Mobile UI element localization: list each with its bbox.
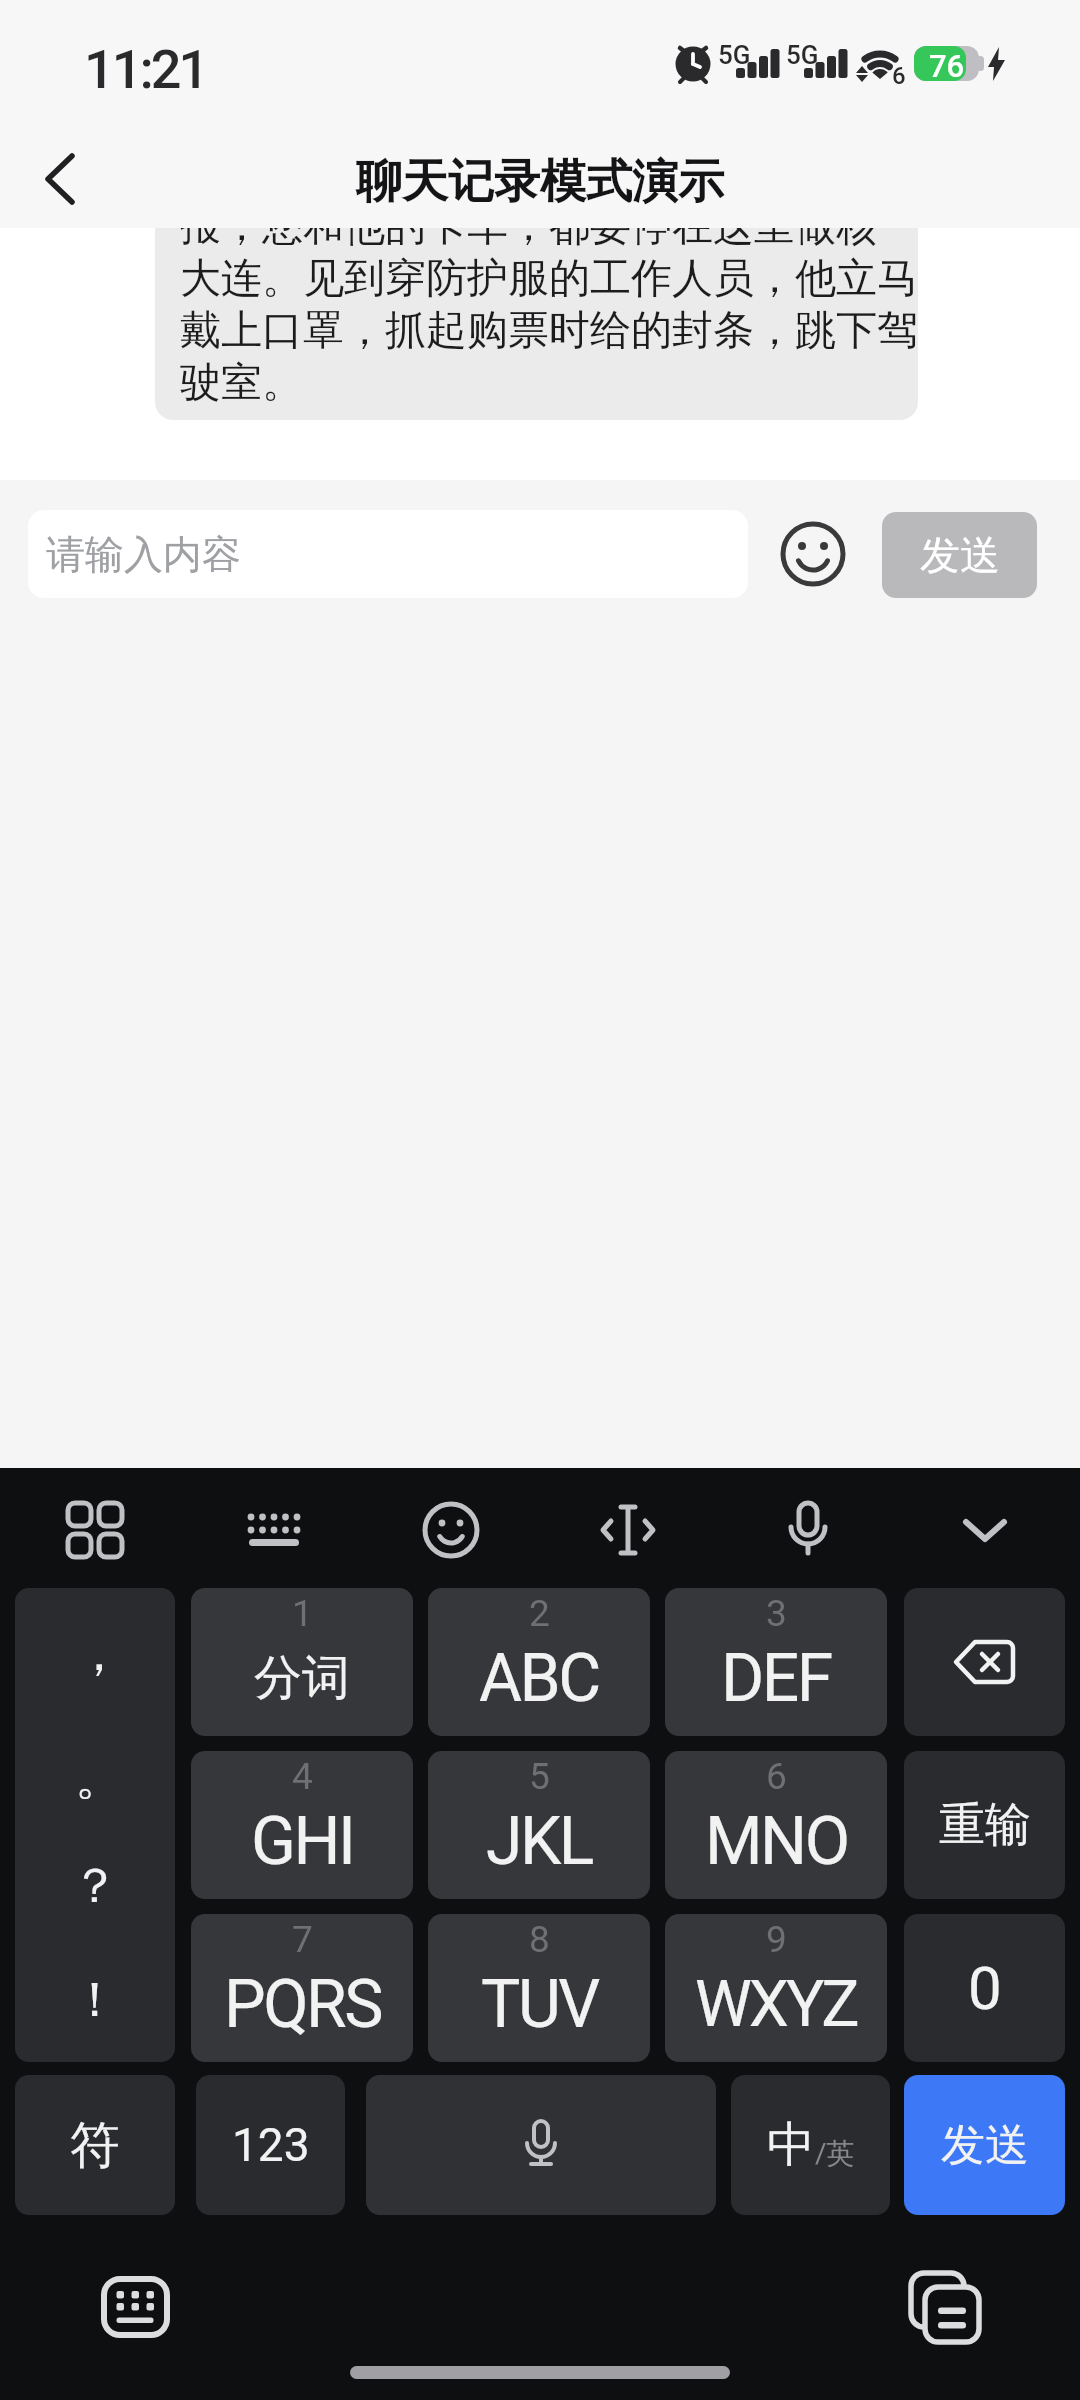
button[interactable]: 3 bbox=[665, 1588, 887, 1736]
button[interactable]: 符 bbox=[15, 2075, 175, 2215]
staticText: 3 bbox=[766, 1592, 787, 1635]
staticText: 7 bbox=[292, 1918, 313, 1961]
button[interactable] bbox=[896, 2262, 994, 2352]
staticText: 符 bbox=[70, 2114, 120, 2177]
button[interactable]: 中 bbox=[731, 2075, 890, 2215]
staticText: 聊天记录模式演示 bbox=[356, 153, 724, 211]
staticText: DEF bbox=[721, 1640, 831, 1717]
button[interactable] bbox=[768, 1490, 848, 1570]
staticText: 戴上口罩，抓起购票时给的封条，跳下驾 bbox=[180, 305, 918, 357]
staticText: 5G bbox=[718, 40, 751, 70]
button[interactable]: 123 bbox=[196, 2075, 345, 2215]
staticText: ABC bbox=[479, 1640, 599, 1717]
staticText: 发送 bbox=[941, 2118, 1029, 2173]
staticText: 驶室。 bbox=[180, 357, 303, 409]
staticText: ？ bbox=[71, 1856, 119, 1916]
button[interactable]: 发送 bbox=[882, 512, 1037, 598]
staticText: 报，您和他的卡车，都要停在这里做核 bbox=[180, 228, 877, 253]
staticText: 1 bbox=[292, 1592, 313, 1635]
button[interactable] bbox=[778, 519, 848, 589]
staticText: 2 bbox=[529, 1592, 550, 1635]
button[interactable] bbox=[588, 1490, 668, 1570]
button[interactable]: 9 bbox=[665, 1914, 887, 2062]
staticText: /英 bbox=[815, 2136, 855, 2171]
button[interactable]: 6 bbox=[665, 1751, 887, 1899]
staticText: WXYZ bbox=[695, 1967, 857, 2042]
staticText: 请输入内容 bbox=[46, 530, 241, 579]
button[interactable] bbox=[25, 144, 95, 214]
staticText: JKL bbox=[486, 1803, 592, 1880]
staticText: ！ bbox=[71, 1970, 119, 2030]
button[interactable] bbox=[86, 2262, 184, 2352]
staticText: 76 bbox=[929, 48, 965, 84]
button[interactable] bbox=[904, 1588, 1065, 1736]
staticText: GHI bbox=[251, 1803, 354, 1880]
staticText: MNO bbox=[705, 1803, 848, 1880]
staticText: 9 bbox=[766, 1918, 787, 1961]
button[interactable]: 重输 bbox=[904, 1751, 1065, 1899]
staticText: 0 bbox=[968, 1953, 1002, 2023]
button[interactable] bbox=[411, 1490, 491, 1570]
staticText: 。 bbox=[75, 1748, 123, 1808]
button[interactable]: 发送 bbox=[904, 2075, 1065, 2215]
button[interactable]: 8 bbox=[428, 1914, 650, 2062]
staticText: 重输 bbox=[939, 1796, 1031, 1854]
staticText: ， bbox=[75, 1624, 123, 1684]
staticText: 6 bbox=[766, 1755, 787, 1798]
staticText: 5 bbox=[529, 1755, 550, 1798]
button[interactable] bbox=[234, 1490, 314, 1570]
staticText: 分词 bbox=[254, 1648, 350, 1708]
button[interactable]: 请输入内容 bbox=[28, 510, 748, 598]
button[interactable]: 5 bbox=[428, 1751, 650, 1899]
button[interactable]: 1 bbox=[191, 1588, 413, 1736]
staticText: 4 bbox=[292, 1755, 313, 1798]
button[interactable]: 7 bbox=[191, 1914, 413, 2062]
button[interactable]: 4 bbox=[191, 1751, 413, 1899]
staticText: 123 bbox=[232, 2118, 310, 2172]
button[interactable] bbox=[945, 1490, 1025, 1570]
staticText: PQRS bbox=[224, 1966, 381, 2043]
staticText: TUV bbox=[481, 1966, 598, 2043]
button[interactable] bbox=[55, 1490, 135, 1570]
staticText: 大连。见到穿防护服的工作人员，他立马 bbox=[180, 253, 918, 305]
staticText: 8 bbox=[529, 1918, 550, 1961]
staticText: 中 bbox=[767, 2115, 815, 2175]
staticText: 6 bbox=[892, 62, 906, 90]
staticText: 发送 bbox=[920, 530, 1000, 580]
button[interactable]: ， bbox=[15, 1588, 175, 2062]
button[interactable]: 2 bbox=[428, 1588, 650, 1736]
button[interactable] bbox=[366, 2075, 716, 2215]
staticText: 11:21 bbox=[84, 38, 207, 101]
button[interactable]: 0 bbox=[904, 1914, 1065, 2062]
staticText: 5G bbox=[786, 40, 819, 70]
